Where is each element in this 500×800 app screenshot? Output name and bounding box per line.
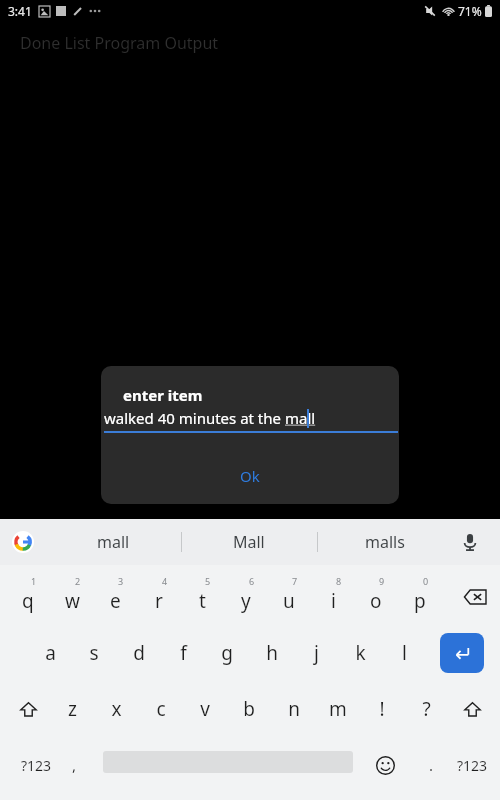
staticText: 9 [379,575,385,587]
button[interactable]: Google [10,529,36,555]
button[interactable]: Emoji [363,737,407,793]
staticText: malls [365,531,405,553]
button[interactable]: g [205,625,249,681]
staticText: 7 [292,575,298,587]
staticText: u [283,588,295,614]
staticText: r [155,588,163,614]
button[interactable]: Voice input [452,524,488,560]
button[interactable]: f [161,625,205,681]
staticText: ! [379,696,385,722]
staticText: 1 [31,575,37,587]
staticText: o [370,588,382,614]
staticText: 4 [162,575,168,587]
button[interactable]: v [183,681,227,737]
staticText: s [89,640,99,666]
staticText: 5 [205,575,211,587]
button[interactable]: Enter [440,633,484,673]
staticText: ?123 [457,756,488,775]
staticText: t [199,588,206,614]
staticText: Done List Program Output [20,32,219,54]
staticText: walked 40 minutes at the [104,408,285,428]
staticText: m [329,696,347,722]
button[interactable]: b [227,681,271,737]
button[interactable]: malls [323,519,447,565]
staticText: , [72,755,77,775]
button[interactable]: n [272,681,316,737]
staticText: n [288,696,300,722]
button[interactable]: 5 [181,569,223,625]
button[interactable]: . [409,737,453,793]
staticText: Ok [240,466,260,486]
button[interactable]: 2 [51,569,93,625]
staticText: mall [97,531,130,553]
button[interactable]: Mall [187,519,311,565]
staticText: z [68,696,77,722]
staticText: w [65,588,80,614]
button[interactable]: 9 [355,569,397,625]
staticText: 6 [249,575,255,587]
button[interactable]: ? [404,681,448,737]
staticText: d [133,640,145,666]
staticText: v [200,696,210,722]
staticText: f [180,640,187,666]
staticText: enter item [123,385,203,405]
staticText: ?123 [21,756,52,775]
staticText: x [111,696,122,722]
button[interactable]: 3 [94,569,136,625]
button[interactable]: 7 [268,569,310,625]
staticText: Mall [233,531,265,553]
staticText: k [355,640,366,666]
button[interactable]: mall [51,519,175,565]
staticText: mall [285,408,316,428]
staticText: ? [422,696,431,722]
button[interactable]: ?123 [447,737,497,793]
staticText: c [156,696,166,722]
button[interactable]: d [117,625,161,681]
button[interactable]: Shift [6,681,50,737]
staticText: g [221,640,233,666]
button[interactable]: x [94,681,138,737]
staticText: 8 [336,575,342,587]
staticText: q [22,588,34,614]
button[interactable]: m [316,681,360,737]
button[interactable]: h [250,625,294,681]
button[interactable]: Backspace [453,569,497,625]
staticText: a [45,640,56,666]
button[interactable]: s [72,625,116,681]
button[interactable]: 1 [7,569,49,625]
button[interactable]: l [382,625,426,681]
staticText: l [402,640,407,666]
staticText: 2 [75,575,81,587]
button[interactable]: Ok [215,460,285,492]
staticText: 71% [458,3,482,19]
staticText: 0 [423,575,429,587]
button[interactable]: Shift [450,681,494,737]
button[interactable]: z [50,681,94,737]
staticText: y [241,588,251,614]
button[interactable]: 0 [399,569,441,625]
button[interactable]: , [52,737,96,793]
button[interactable]: j [294,625,338,681]
button[interactable]: 8 [312,569,354,625]
staticText: h [266,640,278,666]
button[interactable]: ?123 [6,737,66,793]
staticText: j [314,640,319,666]
button[interactable]: 4 [138,569,180,625]
staticText: b [243,696,255,722]
button[interactable]: ! [360,681,404,737]
staticText: 3:41 [8,3,32,19]
button[interactable]: 6 [225,569,267,625]
staticText: i [331,588,336,614]
staticText: 3 [118,575,124,587]
staticText: p [414,588,426,614]
button[interactable]: a [28,625,72,681]
button[interactable]: c [139,681,183,737]
button[interactable]: k [338,625,382,681]
staticText: . [429,755,434,775]
staticText: e [110,588,121,614]
